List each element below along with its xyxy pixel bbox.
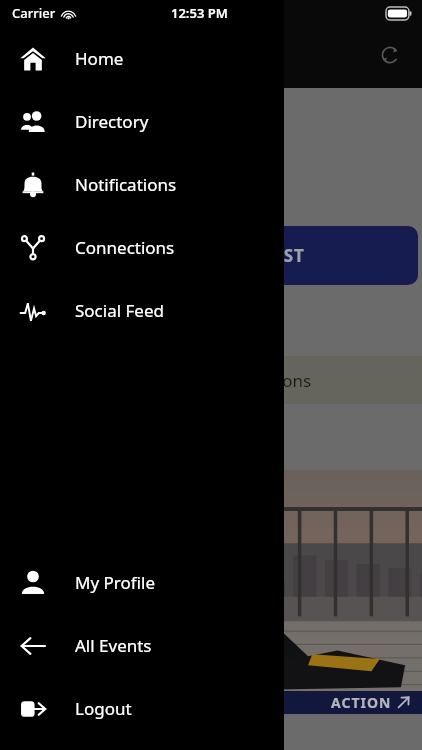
staticText: Connections [75,236,175,259]
button[interactable]: Social Feed [0,279,284,342]
button[interactable]: Logout [0,677,284,740]
staticText: ACTION [331,693,392,712]
staticText: Logout [75,697,132,720]
staticText: 12:53 PM [171,4,228,22]
staticText: Home [75,47,124,70]
button[interactable]: My Profile [0,551,284,614]
staticText: LAPSE [120,120,265,183]
staticText: Directory [75,110,149,133]
button[interactable]: Directory [0,90,284,153]
button[interactable]: Refresh [368,33,412,77]
staticText: Carrier [12,4,56,22]
staticText: My Profile [75,571,155,594]
staticText: THIS REQUEST [174,244,305,267]
button[interactable]: ACTION [0,691,422,714]
button[interactable]: Notifications [0,153,284,216]
staticText: Social Feed [75,299,164,322]
button[interactable] [284,0,422,750]
button[interactable]: Connections [0,216,284,279]
staticText: Notifications [75,173,177,196]
staticText: All Events [75,634,152,657]
button[interactable]: THIS REQUEST [60,226,418,285]
staticText: Options [248,369,312,392]
button[interactable]: All Events [0,614,284,677]
button[interactable]: Home [0,27,284,90]
